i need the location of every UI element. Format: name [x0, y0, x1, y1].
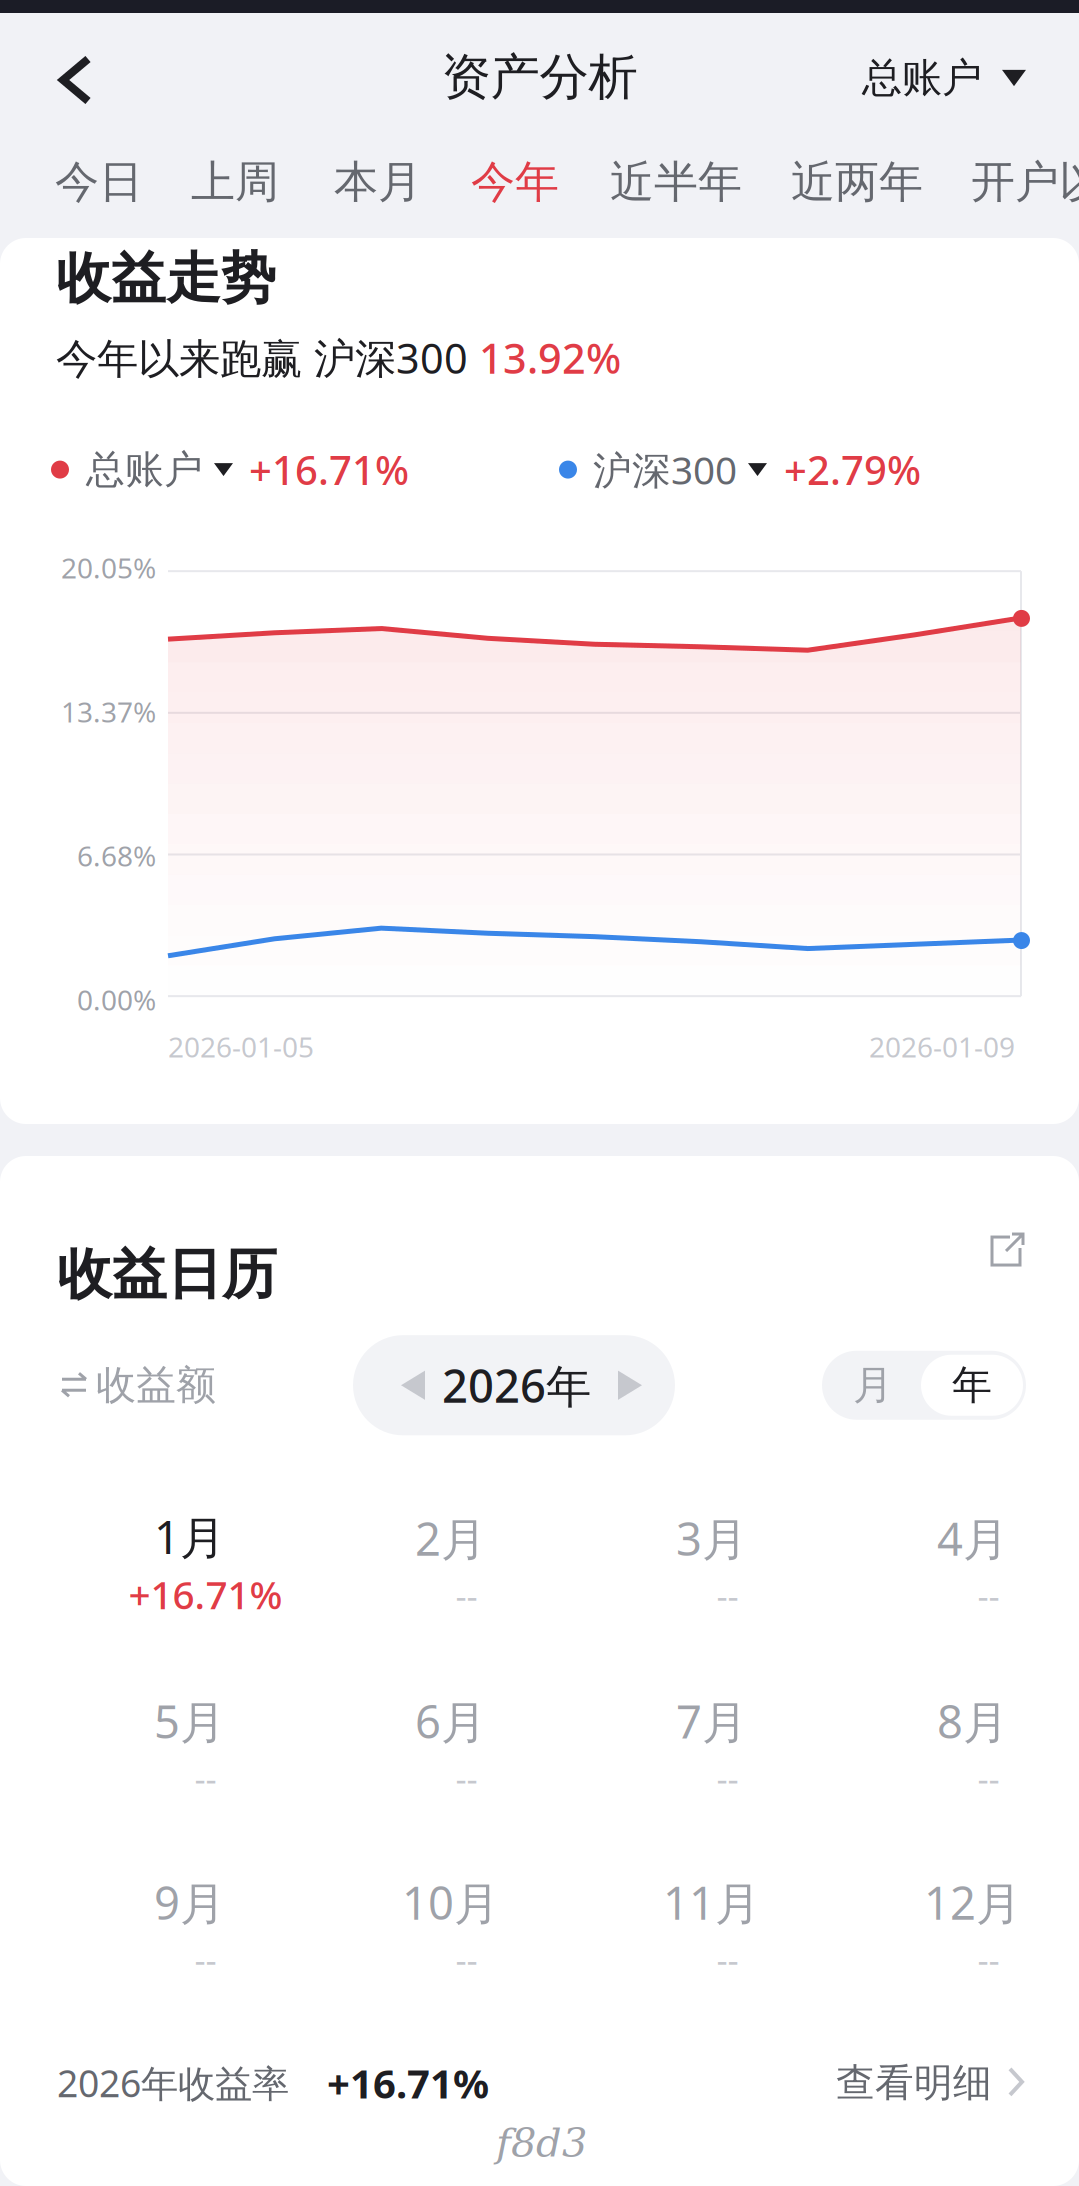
staticText: 总账户 [862, 53, 982, 102]
staticText: 7月 [676, 1691, 747, 1751]
button[interactable]: 开户以来 [971, 155, 1079, 209]
staticText: 本月 [334, 155, 422, 209]
button[interactable]: 年 [921, 1355, 1023, 1416]
staticText: 13.92% [479, 330, 621, 385]
staticText: 上周 [191, 155, 279, 209]
staticText: -- [194, 1936, 216, 1982]
staticText: 收益日历 [57, 1241, 277, 1308]
staticText: 5月 [154, 1691, 225, 1751]
staticText: -- [977, 1572, 999, 1618]
button[interactable]: 今年 [471, 155, 559, 209]
staticText: 开户以来 [971, 155, 1079, 209]
staticText: -- [716, 1572, 738, 1618]
staticText: f8d3 [496, 2119, 587, 2166]
staticText: -- [194, 1755, 216, 1801]
staticText: 沪深300 [593, 444, 737, 495]
staticText: 0.00% [77, 981, 156, 1018]
staticText: +16.71% [128, 1568, 282, 1620]
staticText: 今年以来跑赢 沪深300 [56, 330, 479, 385]
staticText: 近两年 [791, 155, 923, 209]
staticText: -- [716, 1755, 738, 1801]
staticText: 3月 [676, 1508, 747, 1568]
button[interactable]: 查看明细 [836, 2059, 1026, 2107]
staticText: 2026年收益率 [57, 2058, 289, 2108]
staticText: 10月 [402, 1872, 499, 1932]
button[interactable]: 近半年 [610, 155, 742, 209]
staticText: 6.68% [77, 837, 156, 874]
staticText: 2026年 [442, 1355, 591, 1415]
staticText: -- [716, 1936, 738, 1982]
staticText: +16.71% [249, 443, 409, 496]
button[interactable]: 分享 [989, 1232, 1026, 1269]
staticText: 今日 [55, 155, 143, 209]
button[interactable]: 本月 [334, 155, 422, 209]
button[interactable]: 近两年 [791, 155, 923, 209]
staticText: 总账户 [86, 446, 203, 493]
staticText: 12月 [924, 1872, 1021, 1932]
staticText: 月 [853, 1361, 893, 1410]
staticText: 11月 [663, 1872, 760, 1932]
staticText: 近半年 [610, 155, 742, 209]
button[interactable]: 上周 [191, 155, 279, 209]
staticText: 2026-01-05 [168, 1028, 314, 1065]
staticText: 年 [952, 1361, 992, 1410]
staticText: 13.37% [61, 693, 156, 730]
staticText: 6月 [415, 1691, 486, 1751]
staticText: -- [455, 1936, 477, 1982]
staticText: -- [977, 1755, 999, 1801]
staticText: -- [455, 1572, 477, 1618]
staticText: -- [455, 1755, 477, 1801]
staticText: 8月 [937, 1691, 1008, 1751]
staticText: +16.71% [327, 2056, 489, 2109]
button[interactable]: 今日 [55, 155, 143, 209]
staticText: 收益额 [96, 1361, 216, 1410]
button[interactable]: 上一年 [401, 1371, 425, 1400]
staticText: 4月 [937, 1508, 1008, 1568]
button[interactable]: 月 [825, 1354, 921, 1417]
button[interactable]: 总账户 [862, 31, 1079, 116]
button[interactable]: 返回 [0, 34, 122, 114]
staticText: 9月 [154, 1872, 225, 1932]
staticText: 收益走势 [56, 245, 276, 312]
staticText: 资产分析 [441, 47, 637, 107]
staticText: 查看明细 [836, 2059, 992, 2107]
staticText: +2.79% [784, 443, 921, 496]
staticText: 1月 [154, 1506, 225, 1566]
staticText: 2月 [415, 1508, 486, 1568]
button[interactable]: 下一年 [618, 1371, 642, 1400]
staticText: 20.05% [61, 549, 156, 586]
staticText: 今年 [471, 155, 559, 209]
staticText: 2026-01-09 [869, 1028, 1015, 1065]
staticText: -- [977, 1936, 999, 1982]
